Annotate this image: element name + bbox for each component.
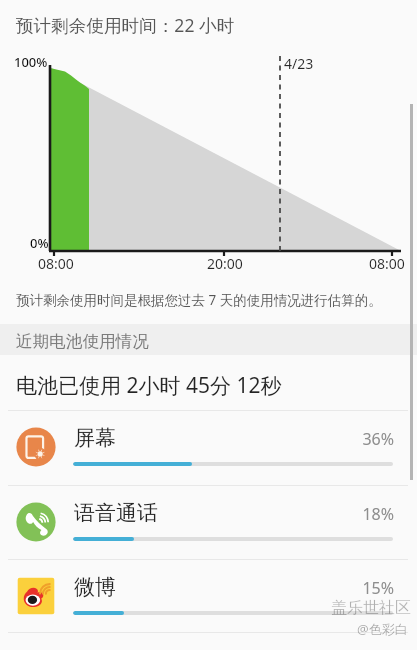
other: 语音通话 bbox=[16, 502, 56, 542]
staticText: 4/23 bbox=[284, 54, 314, 73]
staticText: 0% bbox=[30, 234, 49, 252]
staticText: 近期电池使用情况 bbox=[16, 331, 149, 352]
staticText: 15% bbox=[362, 577, 394, 599]
staticText: @色彩白 bbox=[357, 620, 408, 638]
staticText: 屏幕 bbox=[74, 425, 116, 451]
staticText: 预计剩余使用时间是根据您过去 7 天的使用情况进行估算的。 bbox=[16, 291, 382, 309]
staticText: 语音通话 bbox=[74, 500, 158, 526]
button[interactable]: 语音通话 bbox=[0, 485, 417, 559]
staticText: 36% bbox=[362, 428, 394, 450]
other: 屏幕 bbox=[16, 427, 56, 467]
other: 微博 bbox=[16, 576, 56, 616]
button[interactable]: 微博 bbox=[0, 559, 417, 633]
staticText: 20:00 bbox=[207, 254, 243, 273]
staticText: 18% bbox=[362, 503, 394, 525]
staticText: 100% bbox=[14, 53, 48, 71]
staticText: 微博 bbox=[74, 574, 116, 600]
staticText: 预计剩余使用时间：22 小时 bbox=[16, 13, 235, 37]
button[interactable]: 屏幕 bbox=[0, 410, 417, 484]
staticText: 08:00 bbox=[38, 254, 74, 273]
staticText: 盖乐世社区 bbox=[331, 598, 411, 618]
staticText: 电池已使用 2小时 45分 12秒 bbox=[16, 371, 282, 400]
staticText: 08:00 bbox=[369, 254, 405, 273]
